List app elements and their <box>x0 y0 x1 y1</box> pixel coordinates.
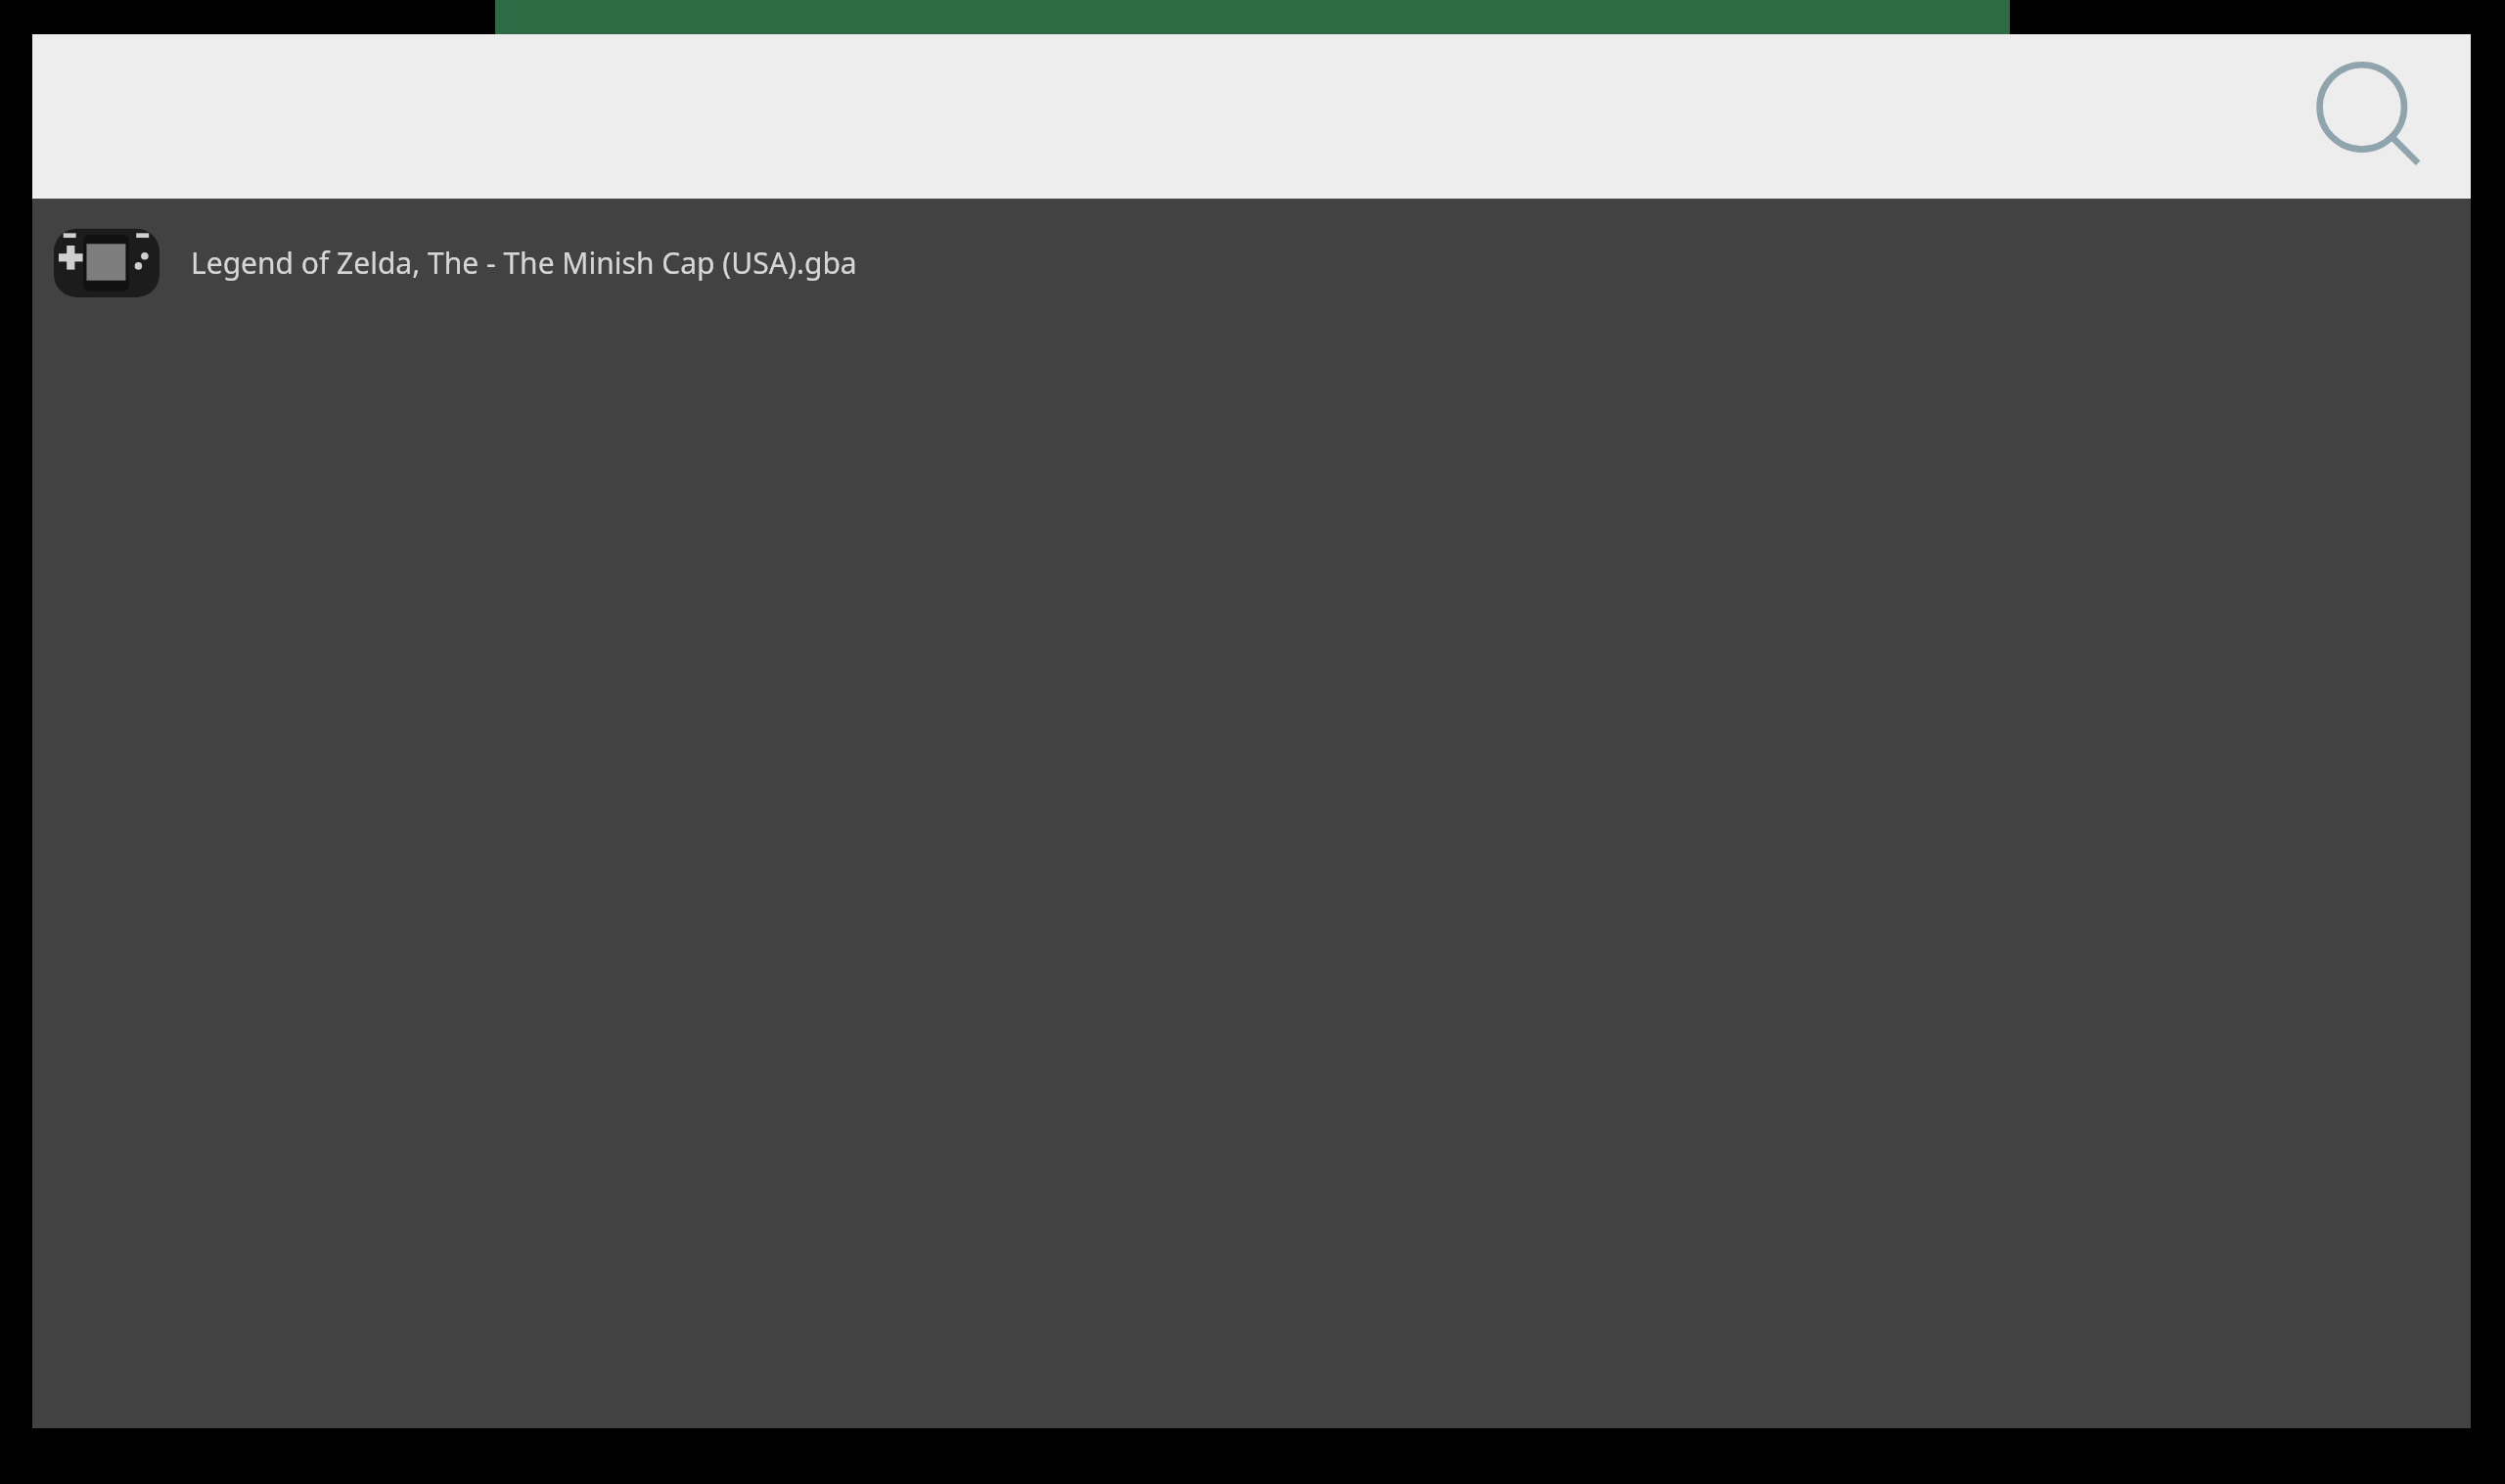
staticText: Legend of Zelda, The - The Minish Cap (U… <box>191 243 857 283</box>
button[interactable]: Search <box>2300 48 2437 185</box>
button[interactable]: Legend of Zelda, The - The Minish Cap (U… <box>32 199 2471 326</box>
